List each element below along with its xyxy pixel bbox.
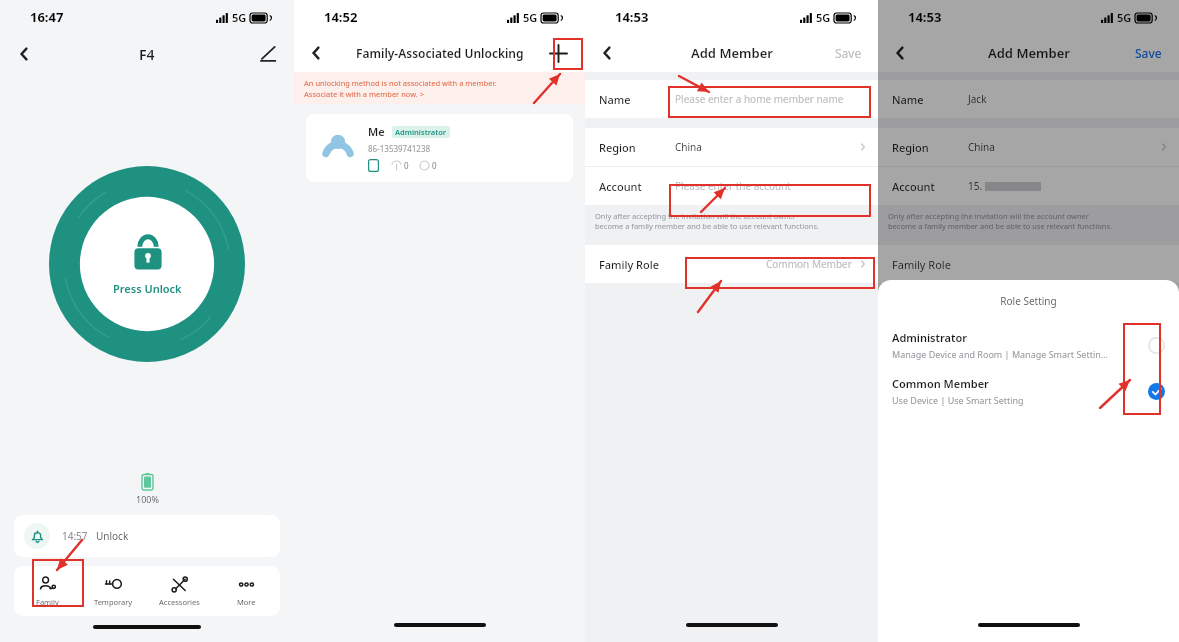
staticText: Use Device | Use Smart Setting — [892, 394, 1024, 406]
staticText: Family-Associated Unlocking — [356, 45, 524, 61]
button[interactable]: Account — [585, 167, 878, 205]
staticText: Save — [1135, 45, 1162, 61]
button[interactable]: Back — [882, 35, 918, 71]
button[interactable]: Temporary — [80, 566, 146, 616]
staticText: Role Setting — [878, 294, 1179, 308]
staticText: Family — [36, 597, 59, 607]
staticText: Region — [599, 140, 661, 155]
button[interactable]: Accessories — [146, 566, 213, 616]
staticText: 5G — [523, 10, 538, 25]
staticText: Common Member — [766, 257, 852, 271]
staticText: Associate it with a member now. > — [304, 89, 425, 99]
staticText: Family Role — [892, 257, 951, 272]
button[interactable]: Back — [298, 35, 334, 71]
staticText: Name — [599, 92, 661, 107]
staticText: China — [675, 140, 702, 154]
button[interactable]: Save — [831, 41, 866, 65]
staticText: F4 — [139, 45, 155, 64]
button[interactable]: Name — [585, 80, 878, 118]
staticText: 0 — [404, 160, 409, 171]
staticText: More — [237, 597, 256, 607]
staticText: 15. — [968, 179, 983, 193]
staticText: Name — [892, 92, 954, 107]
staticText: Add Member — [691, 44, 773, 62]
button[interactable]: Region — [585, 128, 878, 166]
staticText: China — [968, 140, 995, 154]
staticText: Administrator — [395, 127, 447, 137]
staticText: Press Unlock — [113, 281, 182, 296]
staticText: Please enter a home member name — [675, 92, 844, 106]
staticText: Please enter the account — [675, 179, 791, 193]
staticText: Only after accepting the invitation will… — [888, 211, 1089, 221]
staticText: Me — [368, 124, 385, 139]
button[interactable]: Back — [589, 35, 625, 71]
staticText: Accessories — [159, 597, 200, 607]
staticText: 100% — [136, 493, 159, 505]
button[interactable]: Add member — [543, 38, 573, 68]
staticText: Region — [892, 140, 954, 155]
staticText: 14:53 — [908, 8, 942, 26]
button[interactable]: Name — [878, 80, 1179, 118]
staticText: 14:52 — [324, 8, 358, 26]
staticText: Unlock — [96, 529, 129, 543]
button[interactable]: Family — [14, 566, 80, 616]
button[interactable]: Save — [1132, 42, 1165, 64]
staticText: Jack — [968, 92, 987, 106]
staticText: Common Member — [892, 376, 989, 391]
staticText: Save — [835, 45, 862, 61]
button[interactable]: Region — [878, 128, 1179, 166]
staticText: Temporary — [94, 597, 133, 607]
staticText: become a family member and be able to us… — [888, 221, 1113, 231]
staticText: Account — [599, 179, 661, 194]
button[interactable]: More — [213, 566, 280, 616]
button[interactable]: An unlocking method is not associated wi… — [294, 72, 585, 104]
button[interactable]: Edit — [252, 38, 284, 70]
staticText: Account — [892, 179, 954, 194]
staticText: Administrator — [892, 330, 967, 345]
button[interactable]: Common Member — [878, 376, 1179, 406]
staticText: 5G — [816, 10, 831, 25]
staticText: Family Role — [599, 257, 660, 272]
staticText: become a family member and be able to us… — [595, 221, 820, 231]
button[interactable]: Press Unlock — [49, 166, 245, 362]
staticText: An unlocking method is not associated wi… — [304, 78, 497, 88]
staticText: Add Member — [988, 44, 1070, 62]
button[interactable]: Back — [6, 36, 42, 72]
button[interactable]: 14:57 — [14, 515, 280, 557]
staticText: Manage Device and Room | Manage Smart Se… — [892, 348, 1108, 360]
staticText: 0 — [432, 160, 437, 171]
staticText: 5G — [1117, 10, 1132, 25]
staticText: 5G — [232, 10, 247, 25]
staticText: 86-13539741238 — [368, 143, 431, 154]
button[interactable]: Family Role — [585, 245, 878, 283]
staticText: 14:57 — [62, 529, 88, 543]
staticText: Only after accepting the invitation will… — [595, 211, 796, 221]
button[interactable]: Me — [306, 114, 573, 182]
button[interactable]: Administrator — [878, 330, 1179, 360]
staticText: 14:53 — [615, 8, 649, 26]
staticText: 16:47 — [30, 8, 64, 26]
